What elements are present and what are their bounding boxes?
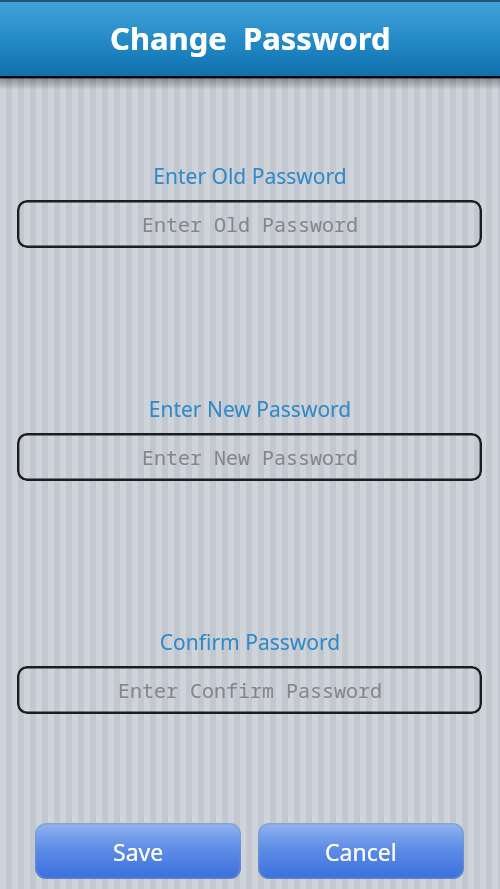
staticText: Cancel <box>325 836 397 867</box>
button[interactable]: Enter Old Password <box>17 200 482 248</box>
staticText: Change Password <box>110 17 391 59</box>
staticText: Enter Old Password <box>0 162 500 191</box>
staticText: Enter New Password <box>0 395 500 424</box>
button[interactable]: Enter New Password <box>17 433 482 481</box>
staticText: Enter Confirm Password <box>118 677 382 704</box>
button[interactable]: Save <box>35 823 241 879</box>
staticText: Enter Old Password <box>142 211 358 238</box>
staticText: Confirm Password <box>0 628 500 657</box>
button[interactable]: Enter Confirm Password <box>17 666 482 714</box>
button[interactable]: Cancel <box>258 823 464 879</box>
staticText: Enter New Password <box>142 444 358 471</box>
staticText: Save <box>113 836 164 867</box>
